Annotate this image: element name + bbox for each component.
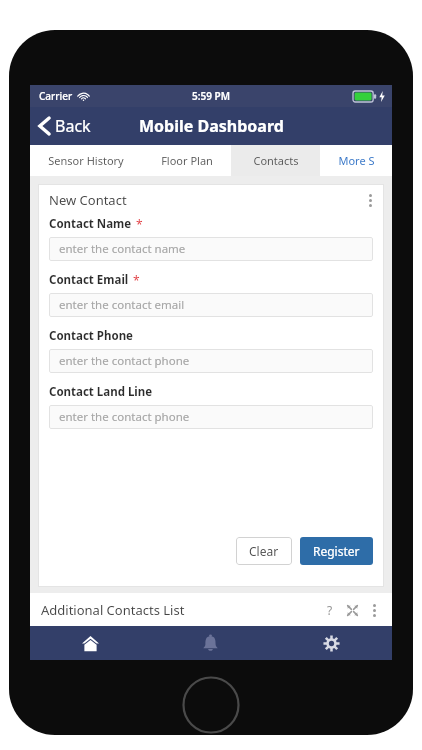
button[interactable]: Notifications bbox=[150, 626, 271, 660]
staticText: Back bbox=[55, 115, 91, 137]
button[interactable]: Home bbox=[30, 626, 150, 660]
staticText: Carrier bbox=[39, 89, 73, 103]
staticText: enter the contact email bbox=[59, 297, 185, 313]
staticText: 5:59 PM bbox=[192, 89, 230, 103]
staticText: enter the contact phone bbox=[59, 353, 190, 369]
staticText: enter the contact phone bbox=[59, 409, 190, 425]
button[interactable]: Register bbox=[300, 537, 373, 565]
button[interactable]: enter the contact name bbox=[49, 237, 373, 261]
staticText: Mobile Dashboard bbox=[139, 115, 284, 137]
button[interactable]: Back bbox=[30, 107, 101, 145]
button[interactable]: More S bbox=[320, 145, 392, 176]
staticText: Clear bbox=[249, 543, 279, 559]
staticText: Additional Contacts List bbox=[41, 601, 185, 619]
staticText: * bbox=[133, 272, 140, 288]
button[interactable]: Additional Contacts List bbox=[30, 593, 392, 626]
staticText: Register bbox=[313, 543, 360, 559]
staticText: enter the contact name bbox=[59, 241, 186, 257]
staticText: Contact Name bbox=[49, 216, 132, 232]
button[interactable]: Expand bbox=[341, 599, 363, 621]
button[interactable]: Settings bbox=[271, 626, 392, 660]
button[interactable]: More options bbox=[356, 186, 384, 214]
button[interactable]: Floor Plan bbox=[142, 145, 231, 176]
staticText: Contact Email bbox=[49, 272, 129, 288]
staticText: Contacts bbox=[253, 153, 299, 168]
staticText: New Contact bbox=[49, 191, 127, 209]
staticText: Floor Plan bbox=[161, 153, 213, 168]
staticText: More S bbox=[338, 153, 375, 168]
staticText: ? bbox=[327, 602, 333, 618]
button[interactable]: Contacts bbox=[231, 145, 320, 176]
button[interactable]: Help bbox=[319, 599, 341, 621]
button[interactable]: enter the contact phone bbox=[49, 405, 373, 429]
staticText: Sensor History bbox=[48, 153, 124, 168]
button[interactable]: Sensor History bbox=[30, 145, 142, 176]
staticText: * bbox=[136, 216, 143, 232]
button[interactable]: enter the contact phone bbox=[49, 349, 373, 373]
staticText: Contact Phone bbox=[49, 328, 133, 344]
button[interactable]: More options bbox=[363, 599, 385, 621]
button[interactable]: enter the contact email bbox=[49, 293, 373, 317]
staticText: Contact Land Line bbox=[49, 384, 153, 400]
button[interactable]: Clear bbox=[236, 537, 292, 565]
